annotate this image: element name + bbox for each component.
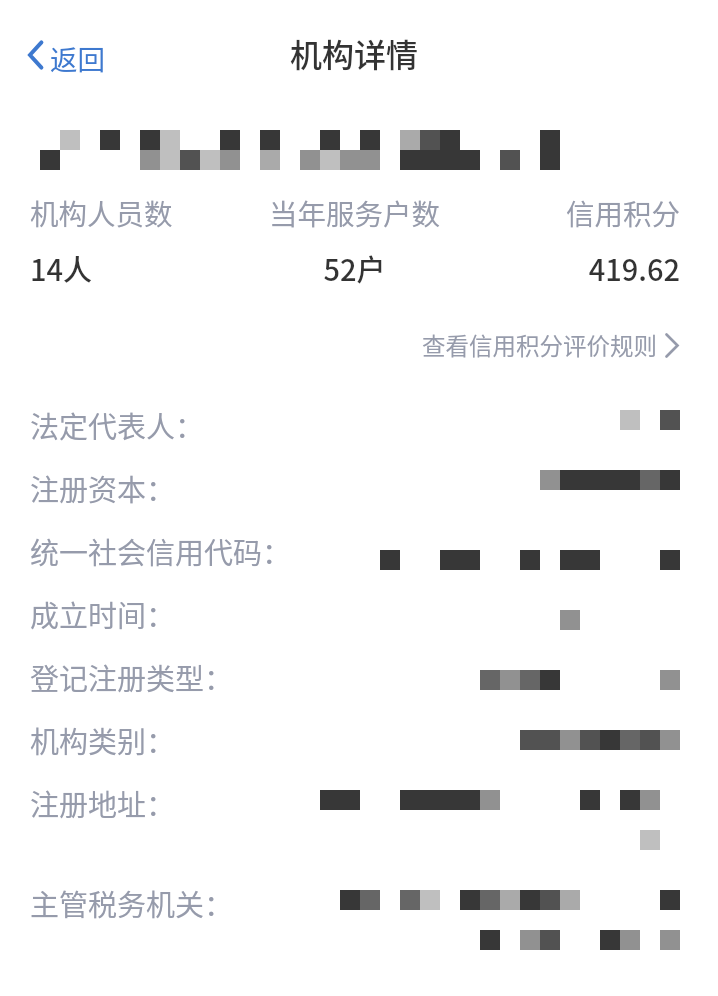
staticText: 返回 [50, 38, 105, 78]
staticText: 机构类别： [30, 719, 176, 761]
staticText: 419.62 [463, 247, 680, 289]
staticText: 机构详情 [290, 30, 419, 76]
staticText: 查看信用积分评价规则 [422, 328, 657, 362]
staticText: 主管税务机关： [30, 882, 234, 924]
staticText: 注册资本： [30, 467, 176, 509]
staticText: 信用积分 [463, 192, 680, 233]
staticText: 52户 [246, 247, 463, 289]
staticText: 机构人员数 [30, 192, 246, 233]
staticText: 成立时间： [30, 593, 176, 635]
staticText: 14人 [30, 247, 246, 289]
staticText: 登记注册类型： [30, 656, 234, 698]
staticText: 统一社会信用代码： [30, 530, 292, 572]
button[interactable]: 查看信用积分评价规则 [420, 324, 681, 366]
staticText: 注册地址： [30, 782, 176, 824]
staticText: 法定代表人： [30, 404, 205, 446]
staticText: 当年服务户数 [246, 192, 463, 233]
button[interactable]: 返回 [14, 26, 120, 81]
